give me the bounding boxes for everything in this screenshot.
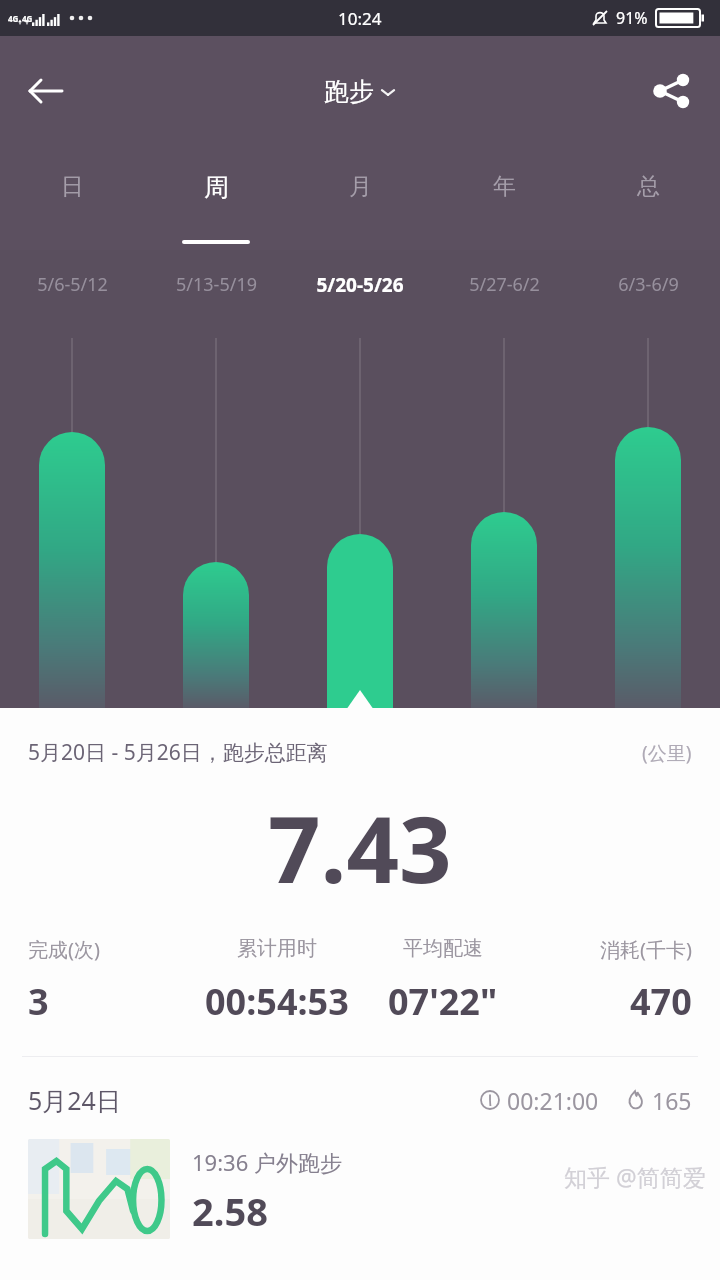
staticText: 4G: [8, 13, 19, 24]
button[interactable]: 5/13-5/19: [144, 272, 288, 297]
button[interactable]: 19:36 户外跑步: [28, 1139, 720, 1239]
staticText: 4G: [22, 13, 33, 24]
staticText: 5月20日 - 5月26日，跑步总距离: [28, 738, 328, 767]
staticText: 5/6-5/12: [37, 272, 108, 297]
staticText: 10:24: [338, 7, 382, 30]
button[interactable]: Back: [14, 59, 78, 123]
staticText: 00:54:53: [205, 977, 349, 1026]
staticText: 5/13-5/19: [176, 272, 257, 297]
staticText: 6/3-6/9: [618, 272, 679, 297]
button[interactable]: 总: [576, 146, 720, 250]
staticText: 470: [630, 977, 692, 1026]
staticText: 周: [204, 172, 229, 203]
button[interactable]: 月: [288, 146, 432, 250]
button[interactable]: 6/3-6/9: [576, 272, 720, 297]
button[interactable]: 5/6-5/12: [0, 272, 144, 297]
staticText: (公里): [642, 740, 692, 766]
staticText: 平均配速: [403, 936, 483, 961]
button[interactable]: 周: [144, 146, 288, 250]
staticText: 3: [28, 977, 49, 1026]
staticText: 00:21:00: [507, 1085, 599, 1116]
staticText: 知乎 @简简爱: [564, 1161, 706, 1192]
staticText: 19:36 户外跑步: [192, 1147, 342, 1177]
staticText: 7.43: [268, 785, 452, 910]
staticText: 消耗(千卡): [600, 936, 692, 963]
staticText: 5/20-5/26: [316, 272, 404, 298]
staticText: 月: [349, 172, 372, 201]
button[interactable]: 年: [432, 146, 576, 250]
button[interactable]: Share: [642, 61, 702, 121]
staticText: 累计用时: [237, 936, 317, 961]
staticText: 07'22": [388, 977, 498, 1026]
staticText: 日: [61, 172, 84, 201]
staticText: 91%: [616, 7, 648, 29]
staticText: 5/27-6/2: [469, 272, 540, 297]
staticText: 165: [652, 1085, 692, 1116]
staticText: 总: [637, 172, 660, 201]
staticText: 年: [493, 172, 516, 201]
button[interactable]: 5/20-5/26: [288, 272, 432, 298]
staticText: 5月24日: [28, 1083, 121, 1117]
button[interactable]: 日: [0, 146, 144, 250]
staticText: 2.58: [192, 1185, 268, 1237]
staticText: 完成(次): [28, 936, 100, 963]
button[interactable]: 5/27-6/2: [432, 272, 576, 297]
staticText: 跑步: [324, 76, 374, 107]
button[interactable]: 跑步: [324, 76, 396, 107]
